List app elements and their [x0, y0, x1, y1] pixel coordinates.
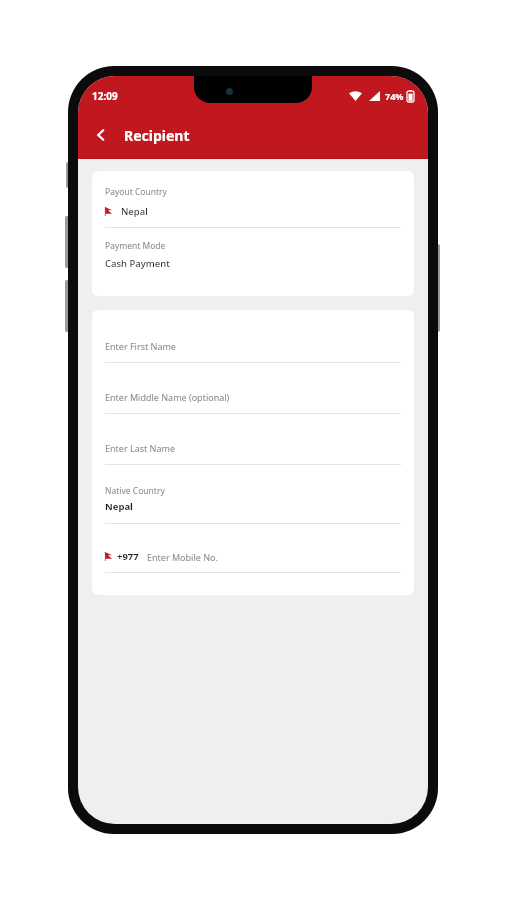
staticText: Native Country — [105, 485, 165, 497]
staticText: 12:09 — [92, 89, 118, 103]
staticText: Recipient — [124, 126, 190, 145]
staticText: +977 — [117, 550, 139, 563]
staticText: Nepal — [105, 500, 133, 513]
staticText: Enter Middle Name (optional) — [105, 391, 230, 403]
staticText: Cash Payment — [105, 257, 170, 270]
button[interactable]: Back — [84, 118, 118, 152]
staticText: Payment Mode — [105, 240, 166, 252]
button[interactable]: Payout Country — [105, 186, 401, 218]
staticText: Nepal — [121, 205, 148, 218]
staticText: Payout Country — [105, 186, 167, 198]
button[interactable]: Enter First Name — [105, 310, 401, 363]
button[interactable]: +977 — [105, 524, 401, 573]
staticText: Enter Last Name — [105, 442, 175, 454]
button[interactable]: Payment Mode — [105, 240, 401, 270]
staticText: 74% — [385, 90, 404, 102]
staticText: Enter Mobile No. — [147, 551, 218, 563]
button[interactable]: Native Country — [105, 465, 401, 524]
button[interactable]: Enter Last Name — [105, 414, 401, 465]
button[interactable]: Enter Middle Name (optional) — [105, 363, 401, 414]
staticText: Enter First Name — [105, 340, 176, 352]
